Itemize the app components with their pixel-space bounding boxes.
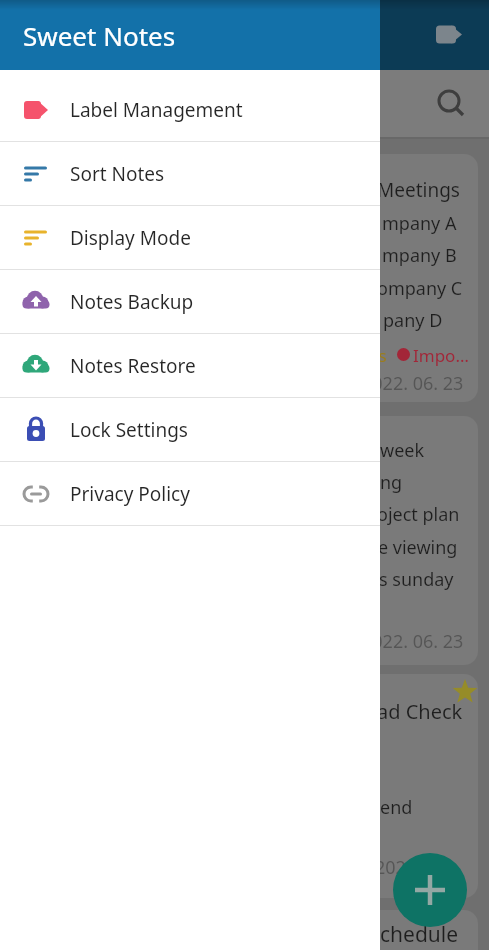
staticText: Lock Settings: [70, 417, 188, 443]
staticText: mpany B: [382, 243, 457, 268]
button[interactable]: Sort Notes: [0, 142, 380, 205]
staticText: mpany A: [382, 211, 457, 236]
staticText: Display Mode: [70, 225, 191, 251]
staticText: oject plan: [377, 502, 460, 527]
staticText: Impo…: [413, 344, 469, 367]
staticText: week: [380, 438, 425, 463]
staticText: end: [380, 795, 413, 820]
staticText: 2022. 06. 23: [362, 371, 464, 396]
staticText: Label Management: [70, 97, 243, 123]
button[interactable]: Lock Settings: [0, 398, 380, 461]
staticText: Notes Restore: [70, 353, 196, 379]
staticText: pany D: [383, 308, 443, 333]
staticText: Meetings: [377, 177, 460, 203]
staticText: s sunday: [379, 567, 454, 592]
staticText: gs: [368, 344, 387, 367]
button[interactable]: Notes Restore: [0, 334, 380, 397]
staticText: Sort Notes: [70, 161, 165, 187]
button[interactable]: Label Management: [0, 78, 380, 141]
button[interactable]: [393, 853, 467, 927]
staticText: 202: [375, 855, 406, 880]
button[interactable]: Display Mode: [0, 206, 380, 269]
staticText: e viewing: [378, 535, 458, 560]
staticText: 2022. 06. 23: [362, 629, 464, 654]
staticText: Privacy Policy: [70, 481, 190, 507]
staticText: ng: [380, 470, 403, 495]
staticText: ad Check: [377, 698, 463, 725]
staticText: Sweet Notes: [23, 18, 176, 53]
button[interactable]: Notes Backup: [0, 270, 380, 333]
staticText: chedule: [380, 920, 459, 949]
staticText: ompany C: [377, 276, 463, 301]
staticText: Notes Backup: [70, 289, 194, 315]
button[interactable]: Privacy Policy: [0, 462, 380, 525]
